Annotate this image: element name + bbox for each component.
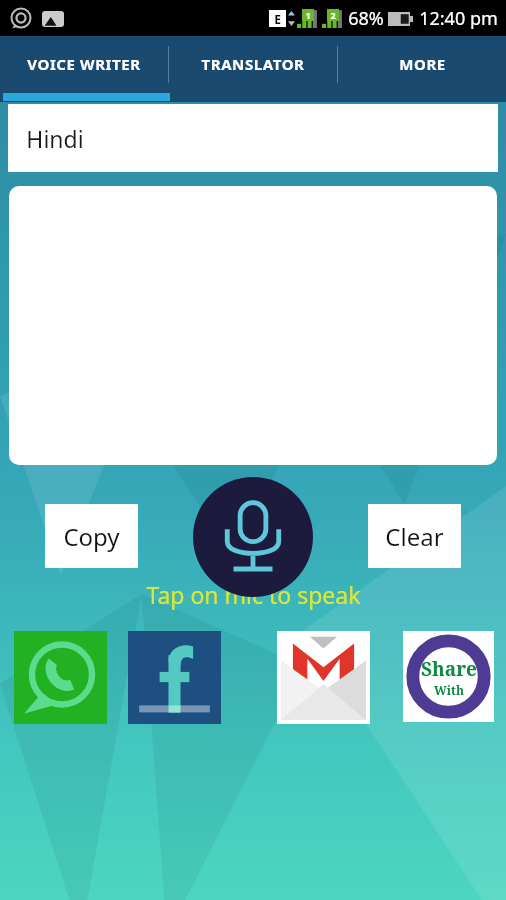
button[interactable]: MORE [338,36,506,92]
button[interactable]: TRANSLATOR [169,36,337,92]
button[interactable]: Hindi [8,104,498,172]
staticText: 68% [348,6,384,31]
staticText: VOICE WRITER [27,54,141,74]
staticText: Copy [63,520,120,553]
staticText: With [434,682,464,698]
button[interactable]: Clear [368,504,461,568]
button[interactable]: Share via Gmail [277,631,370,724]
button[interactable]: VOICE WRITER [0,36,168,92]
button[interactable]: Share with other apps [403,631,494,722]
staticText: Share [421,656,477,682]
staticText: Hindi [26,123,84,154]
staticText: Tap on mic to speak [146,579,361,610]
staticText: E [274,11,281,27]
staticText: Clear [385,520,444,553]
staticText: TRANSLATOR [201,54,305,74]
button[interactable]: Copy [45,504,138,568]
staticText: MORE [399,54,446,74]
button[interactable] [9,186,497,465]
button[interactable]: Share on WhatsApp [14,631,107,724]
staticText: 1 [305,9,311,21]
button[interactable]: Tap on mic to speak [193,477,313,597]
staticText: 12:40 pm [419,6,498,31]
staticText: 2 [330,9,336,21]
button[interactable]: Share on Facebook [128,631,221,724]
